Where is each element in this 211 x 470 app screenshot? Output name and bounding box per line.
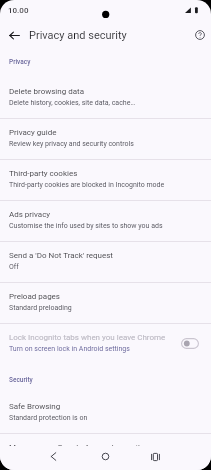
staticText: Standard preloading <box>9 304 211 312</box>
staticText: Delete history, cookies, site data, cach… <box>9 99 211 107</box>
button[interactable]: Privacy guide <box>0 119 211 160</box>
button[interactable]: Home <box>93 446 117 467</box>
button[interactable]: Lock Incognito tabs <box>181 338 199 349</box>
button[interactable]: Preload pages <box>0 283 211 324</box>
button[interactable]: Lock Incognito tabs when you leave Chrom… <box>0 324 211 365</box>
staticText: Safe Browsing <box>9 402 211 411</box>
staticText: Third-party cookies <box>9 169 211 178</box>
staticText: Ads privacy <box>9 210 211 219</box>
staticText: Third-party cookies are blocked in Incog… <box>9 181 211 189</box>
staticText: Delete browsing data <box>9 87 211 96</box>
button[interactable]: Back <box>41 446 65 467</box>
staticText: 10.00 <box>8 6 29 15</box>
staticText: Security <box>9 376 33 384</box>
staticText: Privacy <box>9 58 31 66</box>
staticText: Manage your Google Account security <box>9 443 211 452</box>
button[interactable]: Delete browsing data <box>0 78 211 119</box>
button[interactable]: Help and feedback <box>188 22 211 48</box>
button[interactable]: Send a 'Do Not Track' request <box>0 242 211 283</box>
button[interactable]: Safe Browsing <box>0 393 211 434</box>
button[interactable]: Recent apps <box>143 446 167 467</box>
button[interactable]: Ads privacy <box>0 201 211 242</box>
staticText: Privacy guide <box>9 128 211 137</box>
staticText: Customise the info used by sites to show… <box>9 222 211 230</box>
staticText: Off <box>9 263 211 271</box>
staticText: Turn on screen lock in Android settings <box>9 345 177 353</box>
staticText: Send a 'Do Not Track' request <box>9 251 211 260</box>
staticText: Standard protection is on <box>9 414 211 422</box>
staticText: Review key privacy and security controls <box>9 140 211 148</box>
button[interactable]: Manage your Google Account security <box>0 434 211 470</box>
staticText: Lock Incognito tabs when you leave Chrom… <box>9 333 177 342</box>
staticText: Privacy and security <box>29 29 127 42</box>
staticText: Preload pages <box>9 292 211 301</box>
button[interactable]: Third-party cookies <box>0 160 211 201</box>
button[interactable]: Navigate up <box>1 22 27 48</box>
staticText: Your account is protected <box>9 455 211 463</box>
